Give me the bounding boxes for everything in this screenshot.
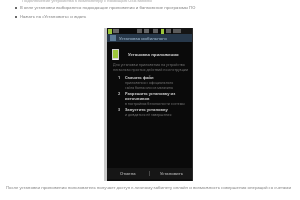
staticText: Нажать на «Установить» и ждать: [20, 14, 87, 20]
button[interactable]: 2: [118, 91, 192, 106]
button[interactable]: Установить: [150, 168, 192, 179]
staticText: в настройках безопасности системы: [125, 101, 185, 106]
staticText: После установки приложения пользователь …: [6, 185, 292, 191]
button[interactable]: Отмена: [107, 168, 149, 179]
staticText: сайта банка или из магазина: [125, 85, 173, 90]
staticText: Установить: [160, 171, 183, 177]
staticText: источников: [125, 96, 150, 101]
staticText: Отмена: [120, 171, 136, 177]
button[interactable]: 3: [118, 107, 192, 117]
staticText: Скачать файл: [125, 75, 154, 80]
staticText: Разрешить установку из неизвестных: [125, 91, 192, 96]
staticText: В окне установки выбираются подходящие п…: [20, 5, 196, 11]
staticText: Для установки приложения на устройство н…: [113, 62, 192, 67]
staticText: Запустить установку: [125, 107, 168, 112]
staticText: 2: [118, 91, 121, 96]
staticText: Подключение устройства к компьютеру с по…: [22, 0, 152, 4]
staticText: 1: [118, 75, 121, 80]
staticText: Установка приложения: [128, 52, 179, 58]
staticText: приложения с официального: [125, 80, 174, 85]
staticText: 3: [118, 107, 121, 112]
button[interactable]: App icon: [107, 34, 192, 42]
staticText: и дождаться её завершения: [125, 112, 172, 117]
staticText: несколько простых действий по инструкции…: [113, 67, 192, 72]
staticText: Установка мобильного приложения банка: [119, 35, 192, 41]
button[interactable]: 1: [118, 75, 192, 90]
